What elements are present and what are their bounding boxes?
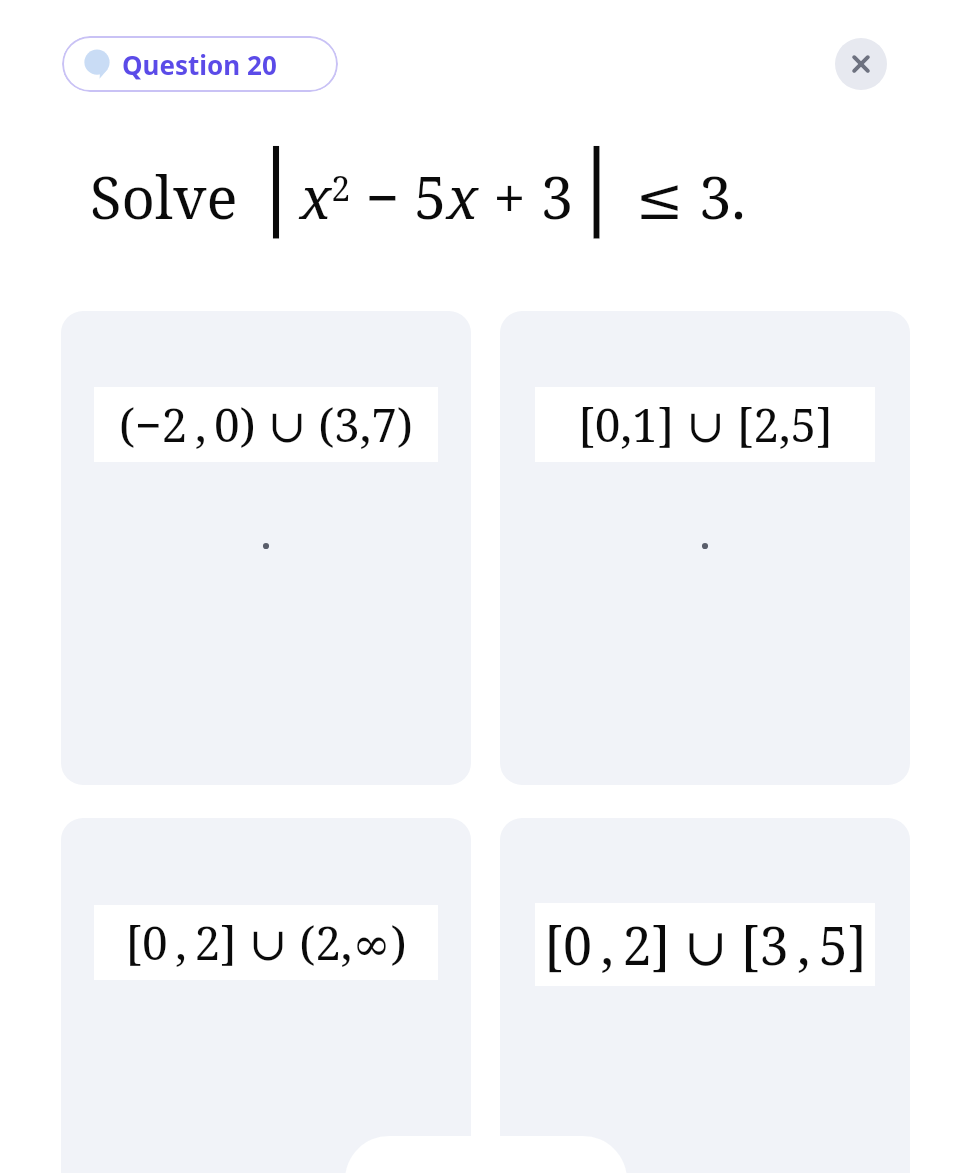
staticText: Solve │x2 − 5x + 3│ ≤ 3. bbox=[90, 147, 746, 238]
button[interactable]: [0,1] ∪ [2,5] bbox=[500, 311, 910, 785]
staticText: [0,1] ∪ [2,5] bbox=[578, 393, 833, 456]
staticText: (−2 , 0) ∪ (3,7) bbox=[119, 393, 413, 456]
button[interactable]: Question 20 bbox=[62, 36, 338, 92]
staticText: [0 , 2] ∪ [3 , 5] bbox=[544, 909, 867, 980]
staticText: [0 , 2] ∪ (2,∞) bbox=[125, 911, 407, 974]
button[interactable]: [0 , 2] ∪ (2,∞) bbox=[61, 818, 471, 1173]
staticText: Question 20 bbox=[122, 47, 277, 82]
button[interactable]: (−2 , 0) ∪ (3,7) bbox=[61, 311, 471, 785]
button[interactable]: Close bbox=[835, 38, 887, 90]
button[interactable]: Bottom action bbox=[345, 1136, 627, 1173]
button[interactable]: [0 , 2] ∪ [3 , 5] bbox=[500, 818, 910, 1173]
